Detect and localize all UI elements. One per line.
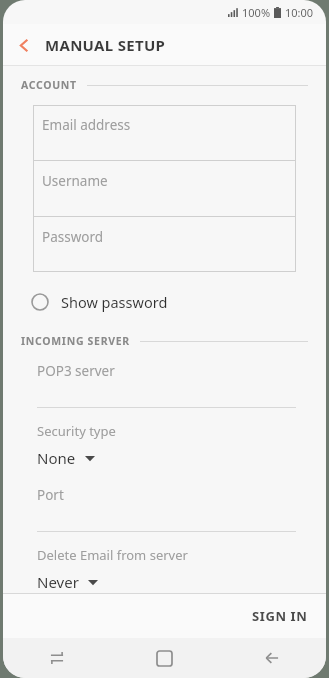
button[interactable]: None	[37, 448, 95, 468]
button[interactable]: Recent apps	[3, 638, 110, 678]
staticText: None	[37, 448, 76, 468]
staticText: Security type	[37, 422, 116, 440]
staticText: Delete Email from server	[37, 546, 188, 564]
staticText: Username	[42, 172, 108, 190]
button[interactable]: POP3 server	[3, 362, 326, 408]
button[interactable]: Back	[3, 24, 45, 66]
staticText: ACCOUNT	[21, 78, 77, 92]
staticText: Never	[37, 572, 79, 592]
button[interactable]: Port	[3, 486, 326, 532]
staticText: INCOMING SERVER	[21, 334, 130, 348]
button[interactable]: Home	[110, 638, 218, 678]
button[interactable]: SIGN IN	[234, 597, 326, 635]
button[interactable]: Show password	[27, 286, 172, 318]
staticText: 10:00	[285, 5, 314, 20]
button[interactable]: Username	[33, 161, 296, 216]
staticText: MANUAL SETUP	[45, 35, 166, 55]
staticText: Show password	[61, 292, 168, 312]
staticText: Password	[42, 228, 104, 246]
staticText: Port	[37, 486, 64, 504]
staticText: Email address	[42, 116, 131, 134]
button[interactable]: Email address	[33, 105, 296, 160]
button[interactable]: Back	[218, 638, 326, 678]
button[interactable]: Password	[33, 217, 296, 272]
staticText: POP3 server	[37, 362, 115, 380]
staticText: 100%	[242, 5, 271, 20]
staticText: SIGN IN	[252, 607, 308, 625]
